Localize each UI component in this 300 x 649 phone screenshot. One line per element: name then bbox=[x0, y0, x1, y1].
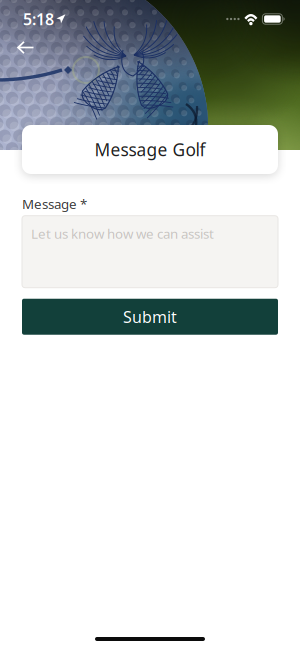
button[interactable]: Message Golf bbox=[0, 125, 300, 174]
button[interactable]: Back bbox=[0, 32, 48, 65]
staticText: Let us know how we can assist bbox=[31, 225, 214, 242]
staticText: Submit bbox=[123, 306, 177, 327]
staticText: Message Golf bbox=[94, 138, 205, 161]
staticText: 5:18 bbox=[23, 8, 54, 30]
staticText: Message * bbox=[22, 195, 87, 213]
button[interactable]: Submit bbox=[22, 299, 278, 335]
